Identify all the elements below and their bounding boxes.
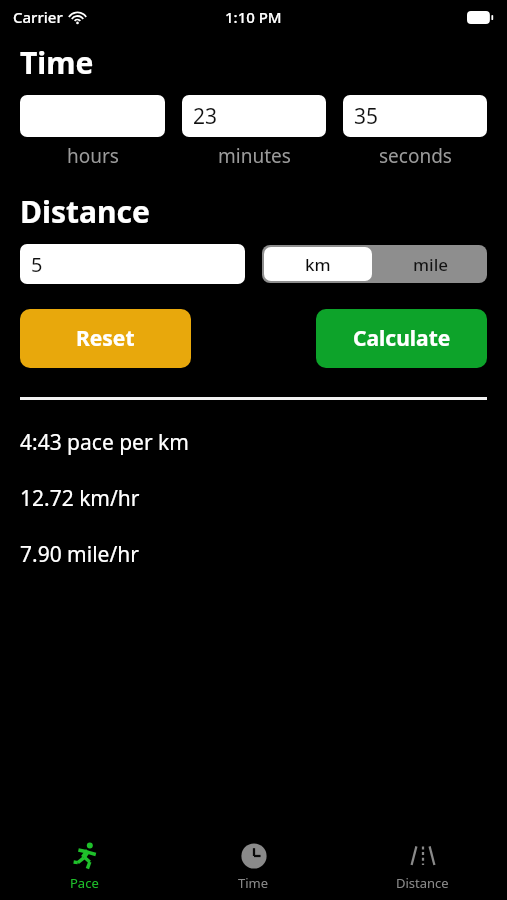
button[interactable]: [20, 95, 165, 137]
staticText: seconds: [379, 143, 452, 169]
button[interactable]: Calculate: [316, 309, 487, 368]
button[interactable]: Pace: [0, 841, 169, 892]
staticText: Distance: [20, 191, 150, 232]
staticText: Time: [20, 42, 94, 83]
button[interactable]: km: [264, 247, 372, 281]
staticText: 23: [193, 102, 218, 131]
staticText: Time: [238, 874, 269, 892]
staticText: 4:43 pace per km: [20, 428, 189, 457]
staticText: 5: [31, 251, 43, 278]
button[interactable]: 5: [20, 244, 245, 284]
staticText: 7.90 mile/hr: [20, 540, 139, 569]
staticText: Pace: [70, 874, 99, 892]
button[interactable]: Distance: [338, 841, 507, 892]
button[interactable]: Time: [169, 841, 338, 892]
button[interactable]: 35: [343, 95, 487, 137]
button[interactable]: 23: [182, 95, 326, 137]
button[interactable]: Reset: [20, 309, 191, 368]
staticText: Calculate: [353, 324, 451, 353]
button[interactable]: mile: [374, 245, 487, 283]
staticText: hours: [67, 143, 119, 169]
staticText: km: [305, 253, 331, 276]
staticText: 1:10 PM: [225, 7, 282, 27]
staticText: 35: [354, 102, 379, 131]
staticText: Carrier: [13, 7, 63, 27]
staticText: minutes: [218, 143, 291, 169]
staticText: Reset: [76, 324, 135, 353]
staticText: mile: [413, 253, 449, 276]
staticText: 12.72 km/hr: [20, 484, 140, 513]
staticText: Distance: [396, 874, 449, 892]
